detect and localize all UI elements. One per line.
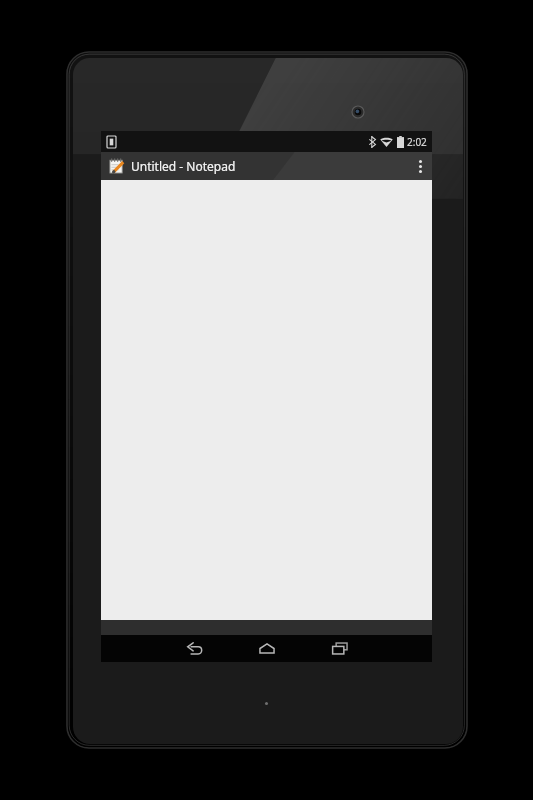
button[interactable]: More options [408,152,432,180]
button[interactable]: Back [173,635,215,662]
button[interactable]: Recent apps [319,635,361,662]
staticText: 2:02 [407,135,427,149]
staticText: Untitled - Notepad [131,158,236,174]
button[interactable]: Home [246,635,288,662]
